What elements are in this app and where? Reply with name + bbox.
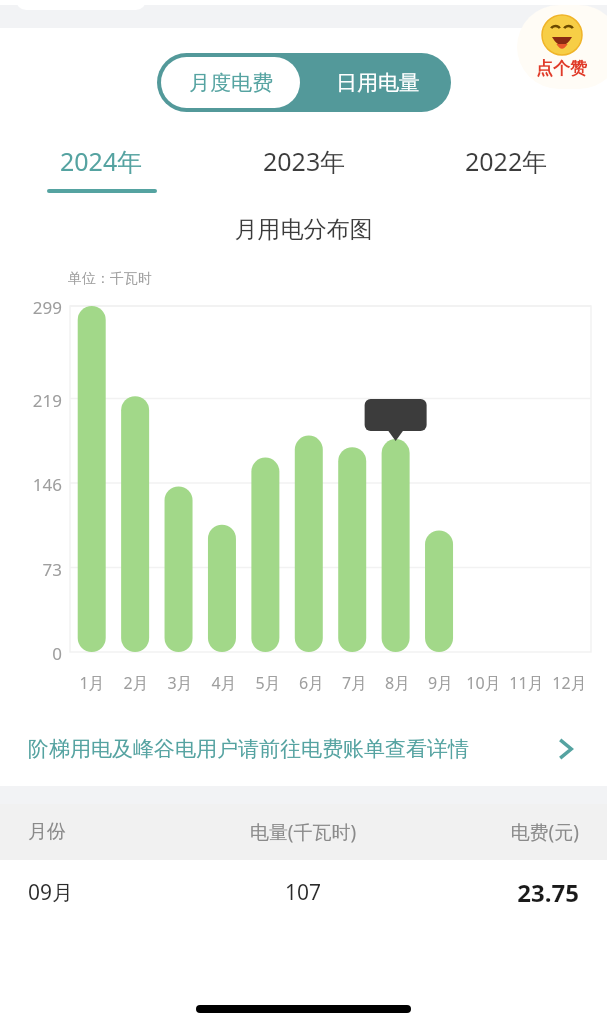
- button[interactable]: 2022年: [405, 142, 607, 195]
- staticText: 09月: [28, 878, 189, 907]
- staticText: 3月: [158, 672, 202, 694]
- staticText: 0: [0, 642, 62, 665]
- staticText: 电量(千瓦时): [189, 819, 417, 845]
- staticText: 12月: [548, 672, 591, 694]
- staticText: 1月: [70, 672, 114, 694]
- staticText: 8月: [376, 672, 419, 694]
- button[interactable]: 阶梯用电及峰谷电用户请前往电费账单查看详情: [0, 712, 607, 786]
- staticText: 11月: [505, 672, 548, 694]
- staticText: 阶梯用电及峰谷电用户请前往电费账单查看详情: [28, 736, 469, 762]
- staticText: 月用电分布图: [0, 215, 607, 244]
- staticText: 点个赞: [536, 58, 587, 79]
- staticText: 日用电量: [336, 70, 420, 96]
- button[interactable]: 09月: [0, 860, 607, 924]
- staticText: 2024年: [60, 144, 143, 178]
- button[interactable]: 点个赞: [517, 5, 607, 89]
- staticText: 7月: [333, 672, 376, 694]
- staticText: 146: [0, 473, 62, 496]
- button[interactable]: 2023年: [203, 142, 405, 195]
- staticText: 6月: [290, 672, 333, 694]
- staticText: 23.75: [417, 876, 579, 909]
- other: 查看详情: [553, 737, 577, 761]
- staticText: 电费(元): [417, 819, 579, 845]
- staticText: 299: [0, 296, 62, 319]
- button[interactable]: 月度电费: [161, 57, 300, 108]
- staticText: 2022年: [465, 144, 548, 178]
- staticText: 月度电费: [189, 70, 273, 96]
- staticText: 5月: [246, 672, 290, 694]
- staticText: 107: [189, 878, 417, 907]
- staticText: 2月: [114, 672, 158, 694]
- staticText: 4月: [202, 672, 246, 694]
- button[interactable]: 2024年: [0, 142, 203, 195]
- staticText: 73: [0, 558, 62, 581]
- staticText: 单位：千瓦时: [68, 270, 152, 288]
- staticText: 2023年: [263, 144, 346, 178]
- staticText: 10月: [462, 672, 505, 694]
- staticText: 9月: [419, 672, 462, 694]
- staticText: 月份: [28, 820, 189, 844]
- button[interactable]: 日用电量: [304, 53, 451, 112]
- staticText: 219: [0, 389, 62, 412]
